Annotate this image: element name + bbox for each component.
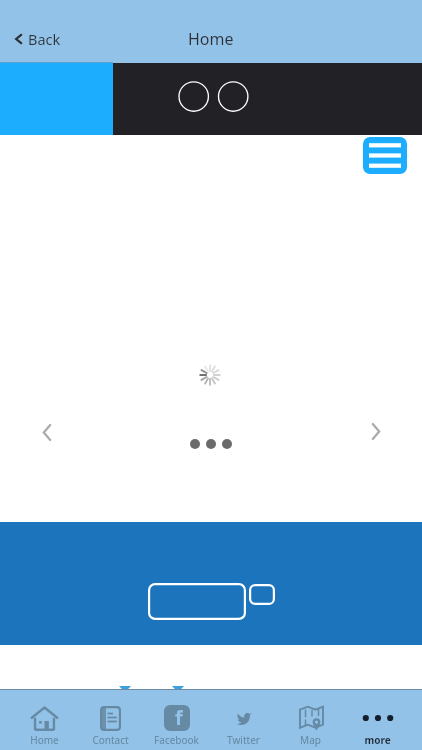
staticText: f [175, 705, 183, 730]
button[interactable]: more [344, 689, 411, 750]
button[interactable]: Submit [249, 584, 275, 605]
staticText: Back [28, 29, 61, 49]
button[interactable]: Back [11, 26, 65, 52]
staticText: Contact [92, 733, 129, 747]
button[interactable]: Map [277, 689, 344, 750]
button[interactable]: f [143, 689, 210, 750]
button[interactable]: Contact [77, 689, 143, 750]
staticText: Facebook [154, 733, 199, 747]
staticText: Map [300, 733, 321, 747]
button[interactable]: Previous [33, 418, 61, 446]
button[interactable]: Twitter [210, 689, 277, 750]
button[interactable]: Text field [148, 583, 246, 620]
staticText: Home [30, 733, 59, 747]
staticText: Twitter [227, 733, 260, 747]
button[interactable]: Home [11, 689, 77, 750]
button[interactable]: Menu [363, 137, 407, 174]
button[interactable]: Next [362, 418, 389, 445]
staticText: Home [188, 28, 234, 50]
staticText: more [364, 733, 391, 747]
